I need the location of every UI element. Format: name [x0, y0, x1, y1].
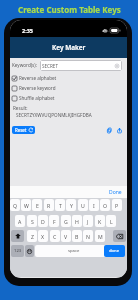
button[interactable]: V: [61, 230, 71, 242]
staticText: Shuffle alphabet: [19, 95, 55, 101]
button[interactable]: O: [100, 199, 110, 211]
staticText: Reset: [15, 127, 27, 133]
button[interactable]: D: [38, 215, 48, 227]
button[interactable]: B: [72, 230, 82, 242]
staticText: Result:: [13, 105, 28, 111]
button[interactable]: Backspace: [113, 230, 126, 242]
staticText: P: [115, 202, 119, 209]
button[interactable]: Clear: [115, 64, 119, 68]
button[interactable]: E: [32, 199, 42, 211]
button[interactable]: I: [89, 199, 99, 211]
button[interactable]: T: [55, 199, 65, 211]
staticText: I: [93, 202, 95, 209]
button[interactable]: Reverse alphabet: [12, 74, 72, 82]
button[interactable]: W: [21, 199, 31, 211]
staticText: 2:35: [22, 27, 33, 34]
button[interactable]: Shuffle alphabet: [12, 94, 72, 102]
button[interactable]: A: [15, 215, 25, 227]
button[interactable]: Shift: [11, 230, 24, 242]
button[interactable]: H: [72, 215, 82, 227]
button[interactable]: done: [104, 245, 125, 257]
staticText: C: [53, 233, 57, 240]
staticText: Key Maker: [52, 43, 86, 52]
button[interactable]: space: [35, 245, 112, 257]
button[interactable]: Reverse keyword: [12, 84, 72, 92]
staticText: M: [98, 233, 103, 240]
staticText: Create Custom Table Keys: [18, 4, 121, 15]
button[interactable]: Emoji: [25, 245, 34, 257]
button[interactable]: Y: [66, 199, 76, 211]
button[interactable]: F: [49, 215, 59, 227]
staticText: F: [53, 218, 56, 225]
staticText: A: [18, 218, 22, 225]
staticText: Done: [109, 189, 122, 196]
staticText: Y: [70, 202, 73, 209]
button[interactable]: J: [83, 215, 93, 227]
button[interactable]: Done: [104, 187, 127, 198]
button[interactable]: K: [95, 215, 105, 227]
staticText: O: [103, 202, 108, 209]
staticText: T: [59, 202, 62, 209]
button[interactable]: Numbers: [11, 245, 24, 257]
staticText: SECRET: [42, 63, 58, 69]
staticText: D: [41, 218, 45, 225]
staticText: W: [24, 202, 29, 209]
staticText: space: [68, 248, 80, 254]
button[interactable]: Z: [27, 230, 37, 242]
button[interactable]: Q: [10, 199, 20, 211]
button[interactable]: L: [106, 215, 116, 227]
staticText: B: [75, 233, 79, 240]
button[interactable]: Reset: [12, 126, 35, 134]
staticText: V: [64, 233, 68, 240]
button[interactable]: M: [95, 230, 105, 242]
staticText: Reverse keyword: [19, 85, 56, 91]
button[interactable]: X: [38, 230, 48, 242]
staticText: S: [31, 218, 34, 225]
staticText: done: [109, 248, 120, 254]
staticText: Keyword(s):: [12, 62, 37, 68]
staticText: H: [75, 218, 79, 225]
staticText: SECRTZYXWVUQPONMLKJIHGFDBA: [16, 112, 92, 118]
button[interactable]: Share: [115, 126, 123, 134]
button[interactable]: G: [61, 215, 71, 227]
staticText: Reverse alphabet: [19, 75, 57, 81]
button[interactable]: N: [83, 230, 93, 242]
button[interactable]: P: [112, 199, 122, 211]
button[interactable]: R: [44, 199, 54, 211]
staticText: J: [87, 218, 89, 225]
staticText: X: [41, 233, 45, 240]
staticText: Q: [13, 202, 18, 209]
button[interactable]: SECRET: [40, 60, 122, 71]
button[interactable]: C: [50, 230, 60, 242]
staticText: K: [98, 218, 102, 225]
staticText: Z: [31, 233, 34, 240]
button[interactable]: U: [78, 199, 88, 211]
staticText: L: [110, 218, 113, 225]
button[interactable]: S: [27, 215, 37, 227]
button[interactable]: Copy: [105, 126, 113, 134]
staticText: N: [86, 233, 90, 240]
staticText: E: [36, 202, 39, 209]
staticText: U: [81, 202, 85, 209]
staticText: 123: [14, 248, 22, 254]
staticText: R: [47, 202, 51, 209]
staticText: G: [64, 218, 68, 225]
